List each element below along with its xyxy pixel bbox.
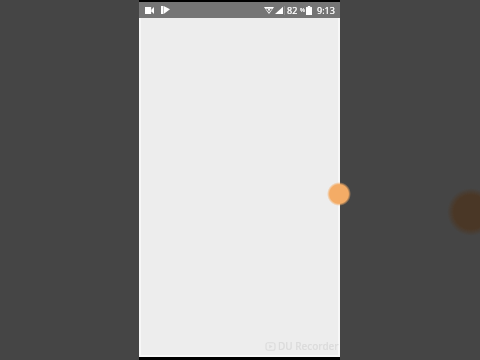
- staticText: 82: [287, 4, 298, 16]
- button[interactable]: Add: [327, 182, 351, 206]
- staticText: 9:13: [317, 4, 335, 16]
- staticText: %: [300, 6, 305, 14]
- staticText: DU Recorder: [278, 339, 339, 353]
